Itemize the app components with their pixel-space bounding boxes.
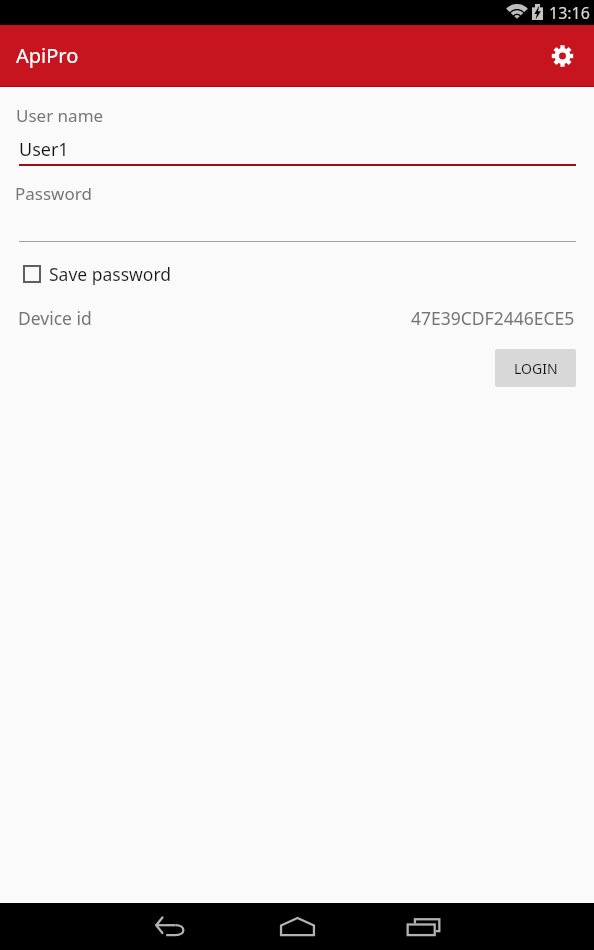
button[interactable]: Recent apps bbox=[387, 903, 460, 950]
button[interactable]: Device id bbox=[0, 300, 594, 330]
staticText: ApiPro bbox=[16, 42, 79, 69]
button[interactable]: Back bbox=[134, 903, 207, 950]
staticText: Password bbox=[15, 182, 92, 205]
button[interactable]: Save password bbox=[23, 262, 172, 286]
staticText: Save password bbox=[49, 262, 172, 286]
staticText: 47E39CDF2446ECE5 bbox=[411, 306, 575, 330]
button[interactable]: User name bbox=[0, 96, 594, 170]
button[interactable]: Home bbox=[260, 903, 334, 950]
staticText: Device id bbox=[18, 306, 92, 330]
staticText: LOGIN bbox=[514, 359, 558, 378]
button[interactable]: Settings bbox=[538, 25, 586, 86]
staticText: 13:16 bbox=[549, 2, 590, 24]
staticText: User name bbox=[16, 104, 104, 127]
button[interactable]: Password bbox=[0, 174, 594, 244]
staticText: User1 bbox=[19, 137, 69, 162]
button[interactable]: LOGIN bbox=[495, 349, 576, 387]
